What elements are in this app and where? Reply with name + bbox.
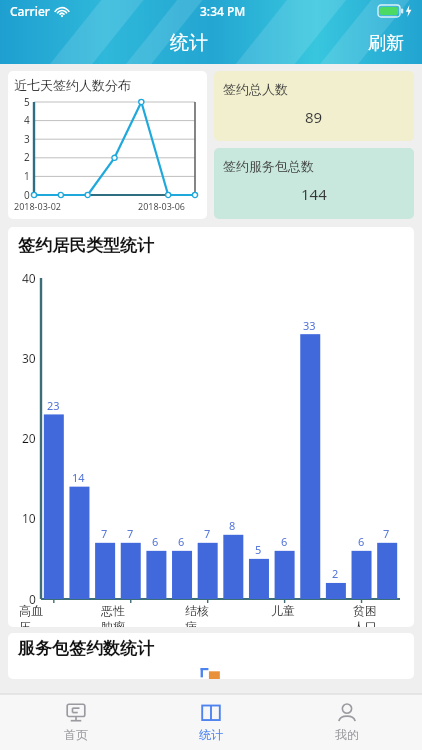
staticText: 6 [281,534,288,549]
staticText: 20 [22,430,36,446]
staticText: 结核病 [185,603,213,627]
staticText: 0 [24,188,30,202]
staticText: 8 [229,518,236,533]
button[interactable]: 签约总人数 [214,71,414,141]
staticText: 33 [303,318,316,333]
staticText: 7 [127,526,134,541]
staticText: 14 [72,470,85,485]
staticText: 2018-03-06 [138,200,185,212]
staticText: 签约总人数 [223,81,288,97]
button[interactable]: 首页 [16,698,136,746]
staticText: 30 [22,350,36,366]
staticText: 高血压 [19,603,46,627]
staticText: 我的 [335,727,359,742]
staticText: 6 [152,534,159,549]
button[interactable]: 近七天签约人数分布 [8,71,207,219]
staticText: 0 [29,591,36,607]
staticText: 7 [101,526,108,541]
button[interactable]: 我的 [287,698,407,746]
staticText: 40 [22,270,36,286]
other: 我的 [336,702,358,724]
staticText: 服务包签约数统计 [18,638,154,659]
other: 统计 [200,702,222,724]
staticText: 6 [358,534,365,549]
staticText: 10 [22,510,36,526]
staticText: 7 [383,526,390,541]
staticText: 统计 [170,31,208,55]
staticText: 5 [24,95,30,109]
staticText: 6 [178,534,185,549]
button[interactable]: 签约服务包总数 [214,148,414,219]
staticText: 1 [24,169,30,183]
button[interactable]: 服务包签约数统计 [8,633,414,679]
staticText: 2 [24,150,30,164]
staticText: 3:34 PM [200,3,246,19]
staticText: 5 [255,542,262,557]
staticText: 签约居民类型统计 [18,235,154,256]
button[interactable]: 签约居民类型统计 [8,227,414,627]
other: 首页 [65,702,87,724]
button[interactable]: 刷新 [364,28,408,59]
staticText: 4 [24,113,30,127]
staticText: 144 [301,184,327,204]
staticText: 刷新 [368,32,404,55]
staticText: 2018-03-02 [14,200,61,212]
staticText: 恶性肿瘤病 [101,603,129,627]
staticText: 3 [24,132,30,146]
staticText: 近七天签约人数分布 [14,77,131,93]
staticText: 2 [332,566,339,581]
button[interactable]: 统计 [151,698,271,746]
staticText: 首页 [64,727,88,742]
staticText: Carrier [10,3,50,19]
staticText: 89 [305,107,323,127]
staticText: 儿童 [271,603,295,618]
staticText: 签约服务包总数 [223,158,314,174]
staticText: 贫困人口 [353,603,381,627]
staticText: 7 [204,526,211,541]
staticText: 23 [47,398,60,413]
staticText: 统计 [199,727,223,742]
